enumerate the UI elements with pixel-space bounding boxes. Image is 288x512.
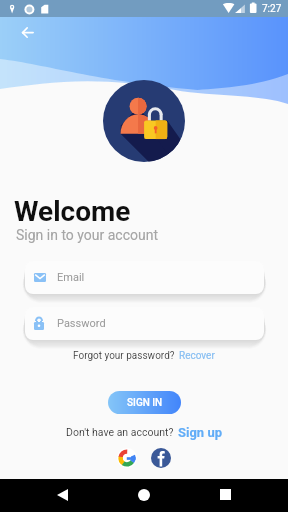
staticText: SIGN IN xyxy=(127,397,163,409)
staticText: Sign in to your account xyxy=(16,227,159,243)
button[interactable]: Back xyxy=(45,478,79,511)
button[interactable]: Password xyxy=(25,307,264,340)
button[interactable]: Back xyxy=(14,21,38,45)
button[interactable]: Sign in with Google xyxy=(117,448,137,468)
button[interactable]: Sign up xyxy=(178,425,222,440)
button[interactable]: Email xyxy=(25,261,264,294)
staticText: Password xyxy=(57,317,106,330)
staticText: Email xyxy=(57,271,85,284)
staticText: Forgot your password? xyxy=(73,350,175,362)
staticText: Don't have an account? xyxy=(66,426,174,438)
staticText: Sign up xyxy=(178,425,222,440)
staticText: Welcome xyxy=(14,195,131,228)
button[interactable]: SIGN IN xyxy=(108,391,181,414)
button[interactable]: Recents xyxy=(208,478,242,511)
button[interactable]: Recover xyxy=(179,350,215,362)
staticText: Recover xyxy=(179,350,215,362)
button[interactable]: Sign in with Facebook xyxy=(151,448,171,468)
staticText: 7:27 xyxy=(262,3,282,15)
button[interactable]: Home xyxy=(127,478,161,511)
